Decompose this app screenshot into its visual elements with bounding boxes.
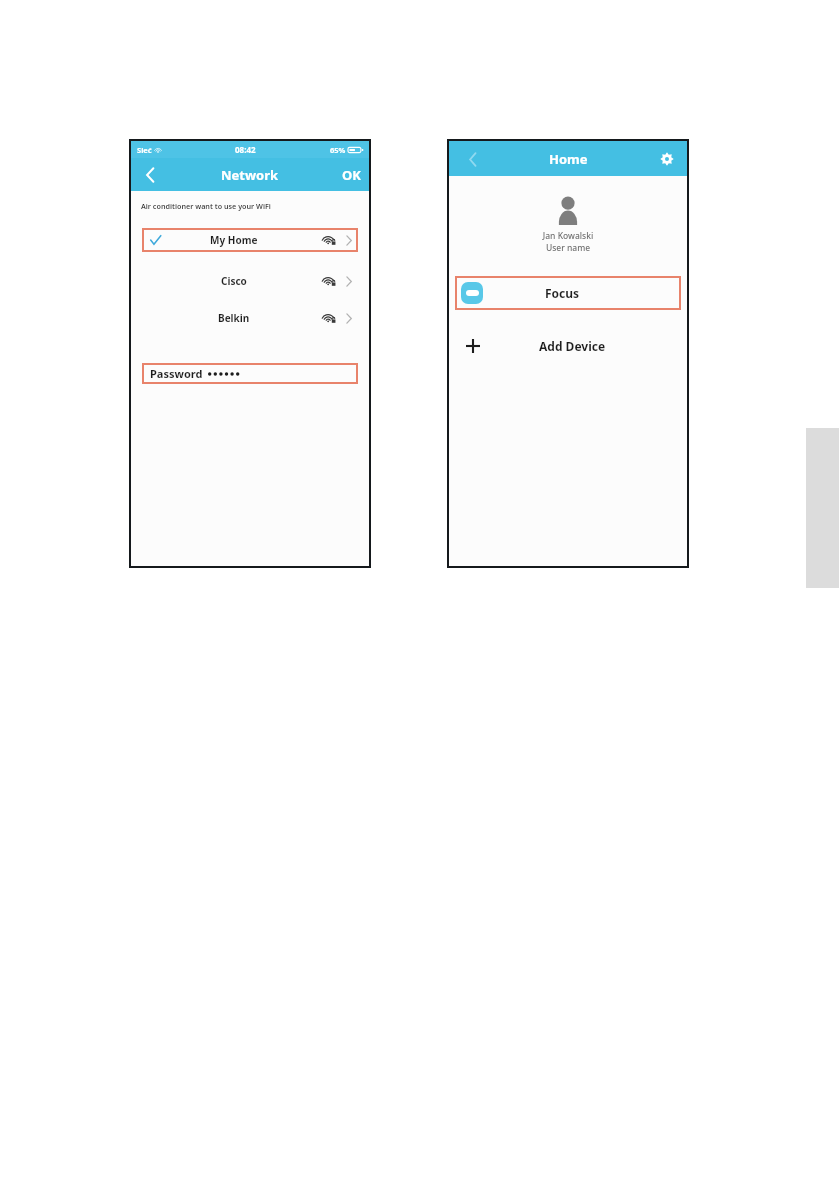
button[interactable]: Focus bbox=[455, 276, 681, 310]
button[interactable]: Belkin bbox=[142, 308, 358, 328]
staticText: Home bbox=[549, 150, 588, 168]
staticText: Add Device bbox=[539, 338, 606, 354]
button[interactable]: Add Device bbox=[455, 332, 681, 360]
staticText: My Home bbox=[210, 233, 258, 247]
staticText: OK bbox=[342, 166, 361, 184]
button[interactable]: Back bbox=[463, 149, 483, 169]
staticText: User name bbox=[449, 242, 687, 254]
staticText: 08:42 bbox=[235, 144, 256, 155]
button[interactable]: Cisco bbox=[142, 271, 358, 291]
staticText: Air conditioner want to use your WiFi bbox=[141, 201, 271, 211]
button[interactable]: Password bbox=[142, 363, 358, 384]
staticText: 65% bbox=[330, 145, 346, 155]
staticText: Jan Kowalski bbox=[449, 230, 687, 242]
staticText: Cisco bbox=[221, 274, 247, 288]
button[interactable]: OK bbox=[342, 166, 361, 184]
button[interactable]: Back bbox=[139, 164, 161, 186]
staticText: Focus bbox=[545, 285, 580, 301]
staticText: Network bbox=[221, 166, 279, 184]
staticText: Password bbox=[150, 366, 203, 381]
button[interactable]: Settings bbox=[656, 148, 678, 170]
staticText: Sieć bbox=[137, 145, 152, 155]
staticText: Belkin bbox=[218, 311, 250, 325]
button[interactable]: My Home bbox=[142, 228, 358, 252]
